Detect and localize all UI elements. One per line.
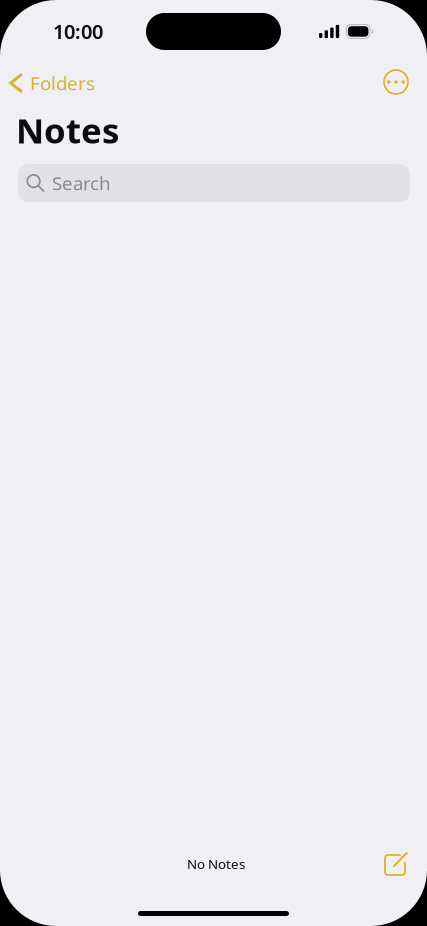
button[interactable]: Folders — [0, 64, 103, 102]
staticText: Folders — [30, 71, 95, 95]
staticText: 10:00 — [53, 18, 103, 45]
staticText: Notes — [16, 107, 119, 153]
button[interactable]: Search — [18, 164, 410, 202]
staticText: No Notes — [187, 855, 245, 873]
button[interactable]: More — [374, 63, 418, 101]
staticText: Search — [52, 171, 111, 195]
button[interactable]: New Note — [375, 844, 419, 884]
